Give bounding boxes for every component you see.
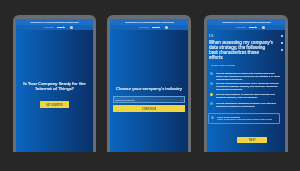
staticText: Select an industry	[115, 98, 135, 101]
staticText: Results	[57, 26, 65, 29]
staticText: Is Your Company Ready for the Internet o…	[21, 80, 88, 91]
button[interactable]: GET STARTED	[40, 101, 69, 108]
button[interactable]: Need more insight?	[211, 115, 277, 122]
button[interactable]: Select an industry	[115, 96, 183, 103]
staticText: Overview	[236, 26, 246, 29]
staticText: Results	[249, 26, 257, 29]
staticText: The Internet of Things Readiness Assessm…	[125, 21, 174, 24]
button[interactable]: Menu	[165, 26, 168, 29]
staticText: GET STARTED	[46, 103, 63, 107]
button[interactable]: We are leveraging predictive analytics a…	[210, 101, 280, 107]
staticText: 1/4	[209, 34, 214, 38]
button[interactable]: Menu	[70, 26, 73, 29]
staticText: When assessing my company's data strateg…	[209, 39, 273, 61]
staticText: Need more insight?	[217, 115, 241, 118]
staticText: Results	[152, 26, 160, 29]
staticText: SELECT ONE ANSWER	[211, 63, 236, 66]
button[interactable]: CONTINUE	[113, 105, 185, 112]
staticText: We are leveraging predictive analytics a…	[216, 101, 280, 107]
staticText: Overview	[139, 26, 149, 29]
other: Expand	[181, 99, 183, 101]
button[interactable]: We are beginning to collect and analyze …	[210, 71, 280, 80]
button[interactable]: NEXT	[237, 137, 267, 143]
button[interactable]: We use data insights to develop new offe…	[210, 92, 280, 98]
staticText: CONTINUE	[142, 107, 157, 111]
staticText: Choose your company's industry	[113, 85, 185, 91]
staticText: The Internet of Things Readiness Assessm…	[222, 21, 271, 24]
staticText: NEXT	[249, 138, 256, 142]
staticText: Overview	[44, 26, 54, 29]
staticText: The Internet of Things Readiness Assessm…	[30, 21, 79, 24]
staticText: Learn more about how the right insight m…	[217, 118, 272, 121]
staticText: We use data insights to develop new offe…	[216, 92, 280, 98]
button[interactable]: We are integrating data from many dispar…	[210, 81, 280, 90]
staticText: We are beginning to collect and analyze …	[216, 71, 280, 80]
button[interactable]: Menu	[262, 26, 265, 29]
staticText: We are integrating data from many dispar…	[216, 81, 280, 90]
